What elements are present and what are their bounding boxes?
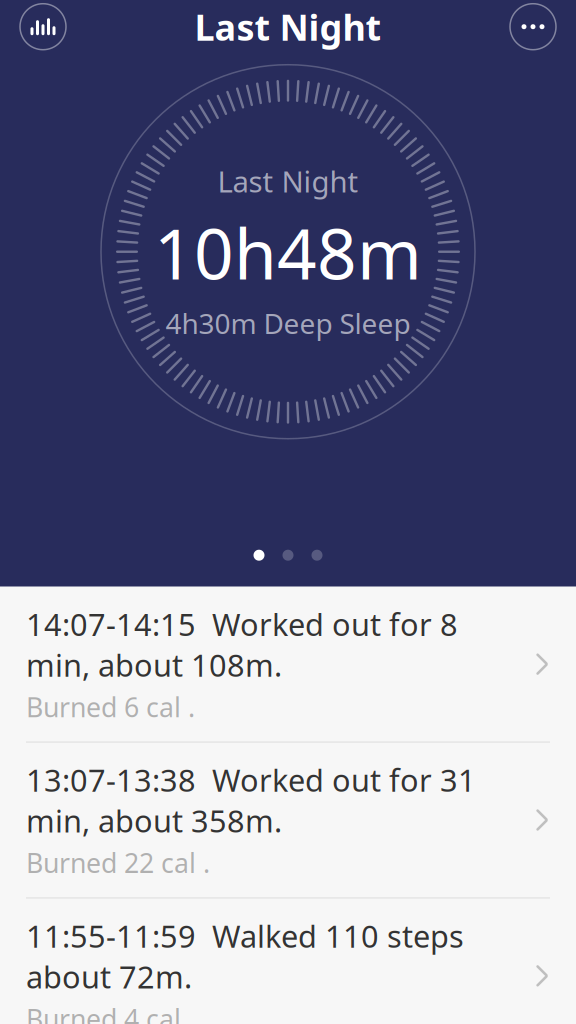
staticText: Burned 4 cal . bbox=[26, 1001, 195, 1024]
button[interactable]: 14:07-14:15 Worked out for 8 min, about … bbox=[0, 587, 576, 742]
button[interactable]: 13:07-13:38 Worked out for 31 min, about… bbox=[0, 743, 576, 897]
staticText: Last Night bbox=[217, 162, 358, 201]
button[interactable]: More options bbox=[510, 4, 556, 50]
staticText: Burned 6 cal . bbox=[26, 689, 195, 725]
button[interactable]: 11:55-11:59 Walked 110 steps about 72m. bbox=[0, 898, 576, 1024]
staticText: Last Night bbox=[194, 3, 381, 51]
button[interactable]: Statistics bbox=[20, 4, 66, 50]
staticText: 13:07-13:38 Worked out for 31 min, about… bbox=[26, 760, 476, 841]
staticText: 11:55-11:59 Walked 110 steps about 72m. bbox=[26, 915, 464, 997]
staticText: Burned 22 cal . bbox=[26, 845, 210, 880]
staticText: 4h30m Deep Sleep bbox=[165, 305, 410, 342]
staticText: 14:07-14:15 Worked out for 8 min, about … bbox=[26, 604, 458, 685]
staticText: 10h48m bbox=[154, 207, 422, 299]
